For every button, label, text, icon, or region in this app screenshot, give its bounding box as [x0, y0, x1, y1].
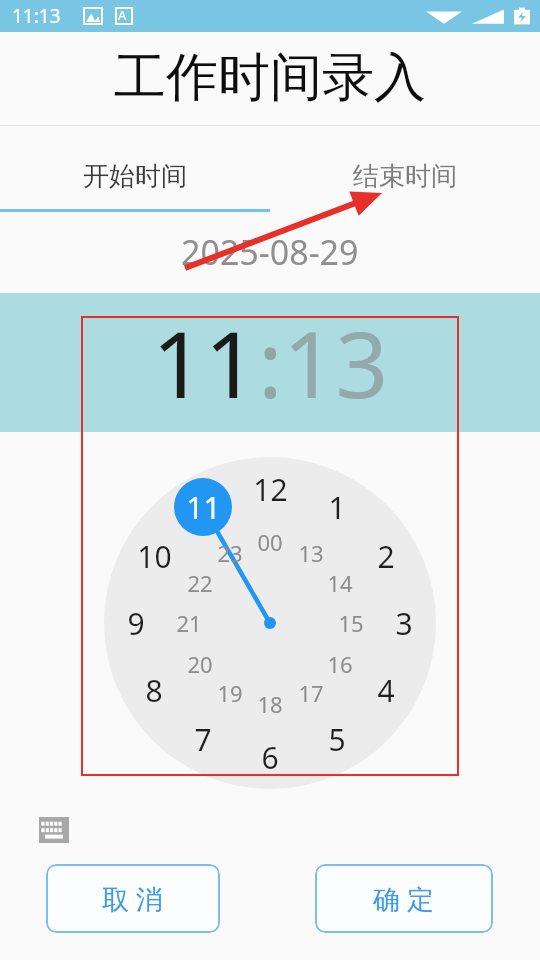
- staticText: 21: [176, 608, 202, 638]
- button[interactable]: 取 消: [46, 864, 220, 933]
- staticText: 16: [327, 649, 353, 679]
- staticText: 9: [127, 603, 145, 643]
- staticText: 15: [338, 608, 364, 638]
- button[interactable]: 13: [283, 300, 389, 425]
- staticText: 结束时间: [353, 160, 457, 193]
- staticText: 17: [298, 678, 324, 708]
- button[interactable]: 开始时间: [0, 140, 270, 212]
- button[interactable]: 结束时间: [270, 140, 540, 212]
- button[interactable]: 11: [152, 300, 258, 425]
- staticText: 2: [377, 536, 395, 576]
- staticText: 23: [217, 538, 243, 568]
- staticText: 20: [187, 649, 213, 679]
- staticText: 8: [145, 670, 163, 710]
- staticText: 14: [327, 568, 353, 598]
- staticText: 11:13: [12, 3, 61, 29]
- staticText: 11: [186, 487, 221, 527]
- staticText: 22: [187, 568, 213, 598]
- staticText: 4: [377, 670, 395, 710]
- staticText: 10: [137, 536, 172, 576]
- staticText: A: [118, 6, 127, 24]
- staticText: 12: [253, 469, 288, 509]
- staticText: 00: [257, 527, 283, 557]
- staticText: 5: [328, 719, 346, 759]
- staticText: 开始时间: [83, 160, 187, 193]
- staticText: 3: [395, 603, 413, 643]
- staticText: 6: [261, 737, 279, 777]
- staticText: 确 定: [373, 880, 435, 917]
- staticText: 1: [328, 487, 346, 527]
- staticText: 取 消: [102, 880, 164, 917]
- staticText: 工作时间录入: [114, 45, 426, 111]
- button[interactable]: Switch to text input: [36, 812, 72, 848]
- staticText: 18: [257, 689, 283, 719]
- staticText: 13: [298, 538, 324, 568]
- staticText: 2025-08-29: [181, 229, 359, 275]
- staticText: :: [258, 300, 283, 425]
- button[interactable]: Clock face hour picker: [0, 0, 540, 960]
- staticText: 19: [217, 678, 243, 708]
- staticText: 7: [194, 719, 212, 759]
- button[interactable]: 确 定: [315, 864, 493, 933]
